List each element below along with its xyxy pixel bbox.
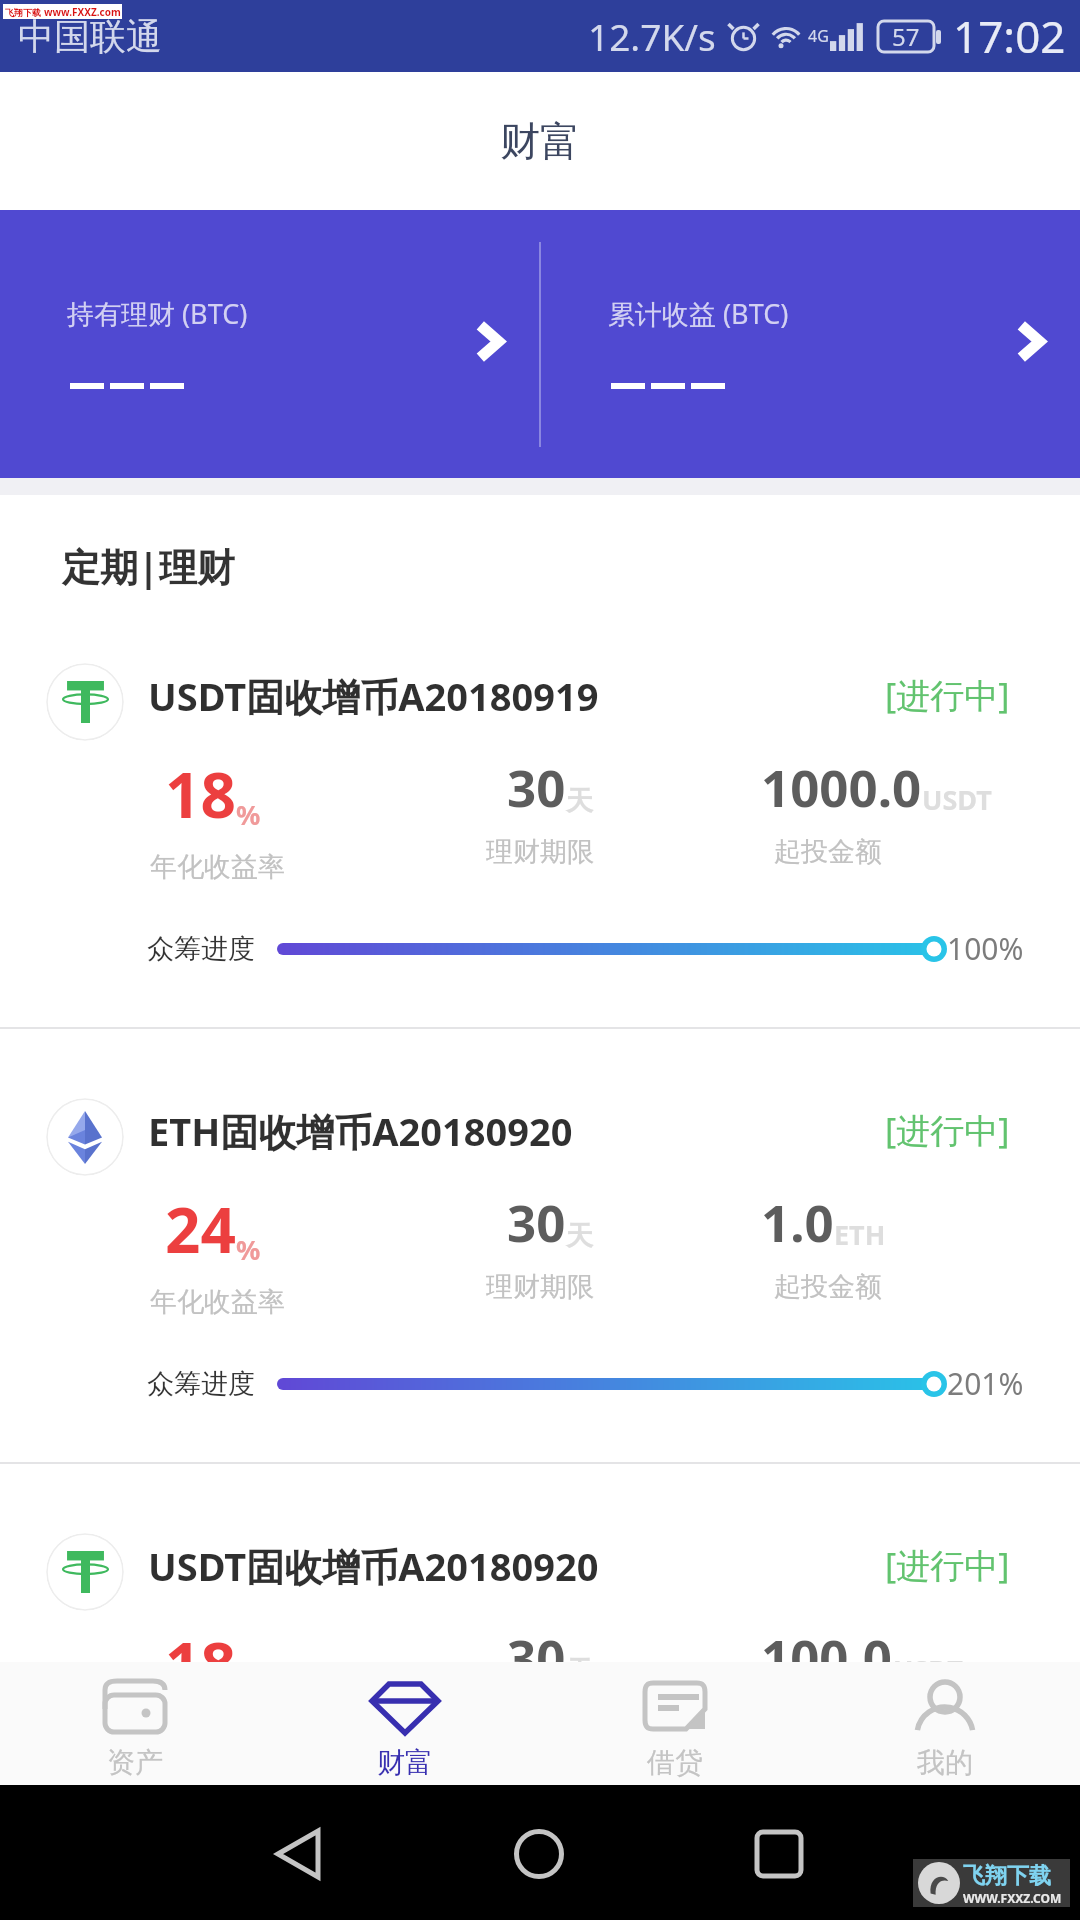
staticText: 17:02 <box>953 6 1066 66</box>
button[interactable]: 财富 <box>270 1667 540 1780</box>
button[interactable]: 借贷 <box>540 1667 810 1780</box>
staticText: 中国联通 <box>18 14 162 59</box>
staticText: 理财期限 <box>486 835 594 869</box>
staticText: 定期|理财 <box>62 540 235 592</box>
staticText: % <box>236 796 261 833</box>
staticText: 飞翔下载 <box>963 1862 1051 1890</box>
staticText: 1.0 <box>761 1187 834 1256</box>
button[interactable]: 我的 <box>810 1667 1080 1780</box>
staticText: 年化收益率 <box>150 850 285 884</box>
staticText: 1000.0 <box>761 752 922 821</box>
staticText: 财富 <box>377 1745 433 1780</box>
other: More <box>476 319 503 364</box>
staticText: 起投金额 <box>774 1270 882 1304</box>
other: Recents <box>754 1827 806 1879</box>
staticText: [进行中] <box>885 1542 1010 1588</box>
staticText: 4G <box>808 25 829 47</box>
staticText: 201% <box>947 1363 1024 1404</box>
staticText: 天 <box>566 1654 593 1662</box>
staticText: [进行中] <box>885 1107 1010 1153</box>
staticText: 30 <box>507 1622 566 1662</box>
staticText: USDT <box>922 781 992 818</box>
staticText: ETH <box>834 1216 886 1253</box>
other: More <box>1017 319 1044 364</box>
staticText: 众筹进度 <box>147 932 255 966</box>
button[interactable]: ETH固收增币A20180920 <box>0 1029 1080 1462</box>
staticText: USDT固收增币A20180920 <box>148 1540 599 1592</box>
staticText: 12.7K/s <box>588 11 716 61</box>
staticText: WWW.FXXZ.COM <box>963 1890 1062 1906</box>
staticText: 财富 <box>500 116 580 166</box>
staticText: 飞翔下载 <box>5 7 41 18</box>
staticText: USDT固收增币A20180919 <box>148 670 599 722</box>
staticText: www.FXXZ.com <box>44 5 121 19</box>
staticText: 年化收益率 <box>150 1285 285 1319</box>
staticText: 100.0 <box>761 1622 893 1662</box>
staticText: USDT <box>893 1651 963 1662</box>
staticText: 30 <box>507 752 566 821</box>
staticText: 持有理财 (BTC) <box>67 295 248 332</box>
staticText: 我的 <box>917 1745 973 1780</box>
button[interactable]: USDT固收增币A20180919 <box>0 594 1080 1027</box>
staticText: 天 <box>566 1219 593 1253</box>
staticText: 18 <box>165 1622 236 1662</box>
staticText: 众筹进度 <box>147 1367 255 1401</box>
button[interactable]: 累计收益 (BTC) <box>541 210 1080 478</box>
button[interactable]: 持有理财 (BTC) <box>0 210 539 478</box>
staticText: 资产 <box>107 1745 163 1780</box>
staticText: 30 <box>507 1187 566 1256</box>
staticText: 24 <box>165 1187 236 1271</box>
staticText: [进行中] <box>885 672 1010 718</box>
staticText: 100% <box>947 928 1024 969</box>
other: Back <box>274 1827 326 1881</box>
staticText: 起投金额 <box>774 835 882 869</box>
other: Home <box>514 1827 566 1879</box>
staticText: 57 <box>892 20 920 53</box>
button[interactable]: 资产 <box>0 1667 270 1780</box>
staticText: 借贷 <box>647 1745 703 1780</box>
staticText: 理财期限 <box>486 1270 594 1304</box>
staticText: ETH固收增币A20180920 <box>148 1105 573 1157</box>
staticText: 18 <box>165 752 236 836</box>
staticText: % <box>236 1231 261 1268</box>
staticText: 天 <box>566 784 593 818</box>
staticText: 累计收益 (BTC) <box>608 295 789 332</box>
button[interactable]: USDT固收增币A20180920 <box>0 1464 1080 1662</box>
